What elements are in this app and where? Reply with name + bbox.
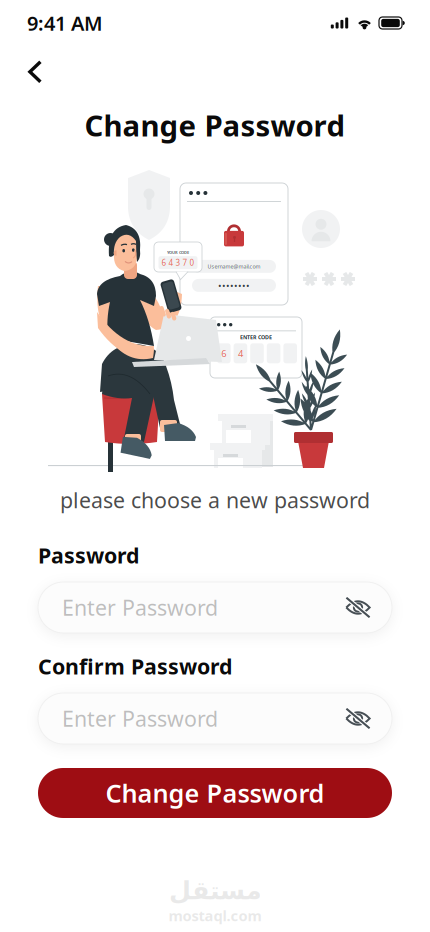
staticText: Confirm Password	[38, 652, 232, 680]
staticText: Username@mail.com	[207, 263, 260, 270]
staticText: 6 4 3 7 0	[161, 257, 194, 268]
button[interactable]: Change Password	[38, 768, 392, 818]
staticText: مستقل	[168, 876, 261, 905]
staticText: Enter Password	[62, 704, 218, 733]
staticText: ENTER CODE	[240, 334, 272, 341]
staticText: mostaql.com	[168, 906, 261, 925]
staticText: YOUR CODE	[167, 250, 189, 255]
staticText: 6	[221, 347, 226, 359]
staticText: please choose a new password	[60, 486, 370, 514]
staticText: Change Password	[105, 776, 324, 810]
staticText: 9:41 AM	[27, 10, 103, 36]
staticText: Enter Password	[62, 593, 218, 622]
staticText: ••••••••	[218, 279, 250, 292]
button[interactable]: Enter Password	[38, 693, 392, 744]
staticText: Change Password	[84, 105, 345, 144]
staticText: Password	[38, 541, 139, 569]
button[interactable]: Back	[0, 50, 58, 94]
button[interactable]: Enter Password	[38, 582, 392, 633]
staticText: 4	[238, 347, 243, 359]
